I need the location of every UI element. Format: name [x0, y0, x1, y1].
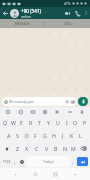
staticText: J	[62, 132, 64, 139]
button[interactable]: R	[26, 116, 35, 129]
staticText: Y	[47, 119, 50, 126]
staticText: online	[21, 14, 31, 19]
button[interactable]: J	[58, 129, 67, 142]
staticText: W	[11, 119, 16, 126]
staticText: I	[66, 119, 68, 126]
button[interactable]: E	[17, 116, 26, 129]
staticText: ,	[14, 159, 16, 165]
staticText: N	[63, 145, 67, 152]
staticText: +90 (541) 482-64-66	[21, 8, 62, 14]
staticText: Z	[16, 145, 19, 152]
button[interactable]: B	[51, 142, 60, 155]
button[interactable]: X	[22, 142, 32, 155]
staticText: Bir mesaj yaz	[9, 99, 65, 104]
staticText: Türkçe	[43, 159, 54, 164]
staticText: MESSAGE	[14, 21, 30, 26]
button[interactable]: L	[76, 129, 85, 142]
button[interactable]: I	[62, 116, 71, 129]
staticText: K	[70, 132, 74, 139]
button[interactable]: N	[60, 142, 69, 155]
button[interactable]: Bir mesaj yaz	[2, 97, 77, 106]
button[interactable]: Home	[30, 169, 40, 179]
button[interactable]: Shift	[1, 142, 12, 155]
button[interactable]: V	[42, 142, 51, 155]
button[interactable]: W	[9, 116, 17, 129]
staticText: P	[83, 119, 87, 126]
button[interactable]: P	[80, 116, 89, 129]
button[interactable]: Settings	[53, 108, 61, 116]
button[interactable]: M	[69, 142, 78, 155]
button[interactable]: K	[67, 129, 76, 142]
button[interactable]: Q	[1, 116, 9, 129]
button[interactable]: Hide keyboard	[70, 169, 80, 179]
staticText: X	[25, 145, 29, 152]
staticText: H	[52, 132, 56, 139]
staticText: M	[71, 145, 76, 152]
button[interactable]: H	[49, 129, 58, 142]
staticText: L	[79, 132, 82, 139]
button[interactable]: Y	[44, 116, 53, 129]
button[interactable]: Record voice message	[78, 97, 88, 106]
staticText: F	[34, 132, 37, 139]
staticText: T	[38, 119, 41, 126]
button[interactable]: Clipboard	[17, 108, 25, 116]
staticText: E	[20, 119, 23, 126]
staticText: R	[29, 119, 33, 126]
button[interactable]: Back	[0, 8, 10, 18]
staticText: Q	[3, 119, 8, 126]
button[interactable]: G	[4, 108, 12, 116]
staticText: 47%	[64, 2, 71, 6]
button[interactable]: Z	[12, 142, 22, 155]
staticText: CALL	[64, 21, 72, 26]
button[interactable]: Enter	[77, 157, 88, 166]
staticText: V	[45, 145, 49, 152]
button[interactable]: Türkçe	[27, 156, 69, 167]
button[interactable]: F	[31, 129, 40, 142]
button[interactable]: Sticker	[41, 108, 49, 116]
button[interactable]: ?123	[1, 156, 12, 167]
staticText: G	[43, 132, 47, 139]
staticText: S	[16, 132, 19, 139]
button[interactable]: ,	[12, 156, 18, 167]
staticText: C	[35, 145, 39, 152]
button[interactable]: Emoji	[18, 156, 26, 167]
button[interactable]: O	[71, 116, 80, 129]
staticText: ?123	[3, 159, 11, 164]
button[interactable]: U	[53, 116, 62, 129]
button[interactable]: S	[13, 129, 22, 142]
button[interactable]: CALL	[45, 21, 90, 26]
button[interactable]: G	[40, 129, 49, 142]
button[interactable]: More	[66, 108, 74, 116]
staticText: A	[7, 132, 11, 139]
button[interactable]: D	[22, 129, 31, 142]
button[interactable]: Voice input	[78, 108, 86, 116]
button[interactable]: Recent apps	[50, 169, 60, 179]
staticText: B	[54, 145, 58, 152]
staticText: D	[25, 132, 29, 139]
button[interactable]: Video call	[62, 8, 72, 18]
staticText: .	[72, 159, 74, 165]
button[interactable]: Backspace	[78, 142, 89, 155]
staticText: O	[73, 119, 78, 126]
button[interactable]: Voice call	[72, 8, 82, 18]
button[interactable]: More options	[82, 9, 90, 17]
button[interactable]: C	[32, 142, 42, 155]
button[interactable]: Back	[10, 169, 20, 179]
button[interactable]: .	[70, 156, 76, 167]
button[interactable]: T	[35, 116, 44, 129]
button[interactable]: A	[5, 129, 13, 142]
staticText: U	[56, 119, 60, 126]
button[interactable]: Contact photo	[10, 9, 19, 18]
button[interactable]: MESSAGE	[0, 21, 44, 26]
button[interactable]: GIF	[29, 108, 37, 116]
